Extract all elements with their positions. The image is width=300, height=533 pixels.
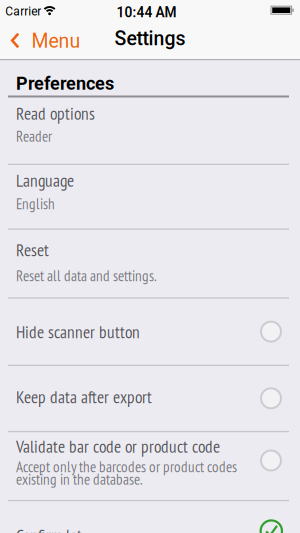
staticText: Menu bbox=[31, 30, 80, 52]
staticText: Keep data after export bbox=[16, 385, 152, 408]
button[interactable]: Reset bbox=[0, 230, 300, 297]
button[interactable]: Menu bbox=[0, 30, 80, 52]
button[interactable]: Language bbox=[0, 165, 300, 228]
staticText: existing in the database. bbox=[16, 469, 143, 489]
staticText: 10:44 AM bbox=[116, 4, 176, 21]
staticText: Language bbox=[16, 169, 74, 191]
staticText: Settings bbox=[114, 27, 185, 50]
staticText: Validate bar code or product code bbox=[16, 435, 220, 457]
button[interactable]: Read options bbox=[0, 97, 300, 164]
staticText: Reader bbox=[16, 126, 52, 146]
staticText: Reset all data and settings. bbox=[16, 266, 157, 285]
staticText: Preferences bbox=[16, 73, 114, 94]
staticText: Reset bbox=[16, 238, 49, 261]
button[interactable]: Validate bar code or product code bbox=[0, 432, 300, 500]
staticText: Confirm lot bbox=[16, 524, 82, 533]
staticText: English bbox=[16, 194, 55, 213]
button[interactable]: Hide scanner button bbox=[0, 299, 300, 365]
button[interactable]: Confirm lot bbox=[0, 501, 300, 533]
staticText: Accept only the barcodes or product code… bbox=[16, 457, 237, 476]
staticText: Hide scanner button bbox=[16, 320, 140, 343]
button[interactable]: Keep data after export bbox=[0, 366, 300, 431]
staticText: Carrier bbox=[5, 4, 41, 19]
staticText: Read options bbox=[16, 102, 95, 124]
